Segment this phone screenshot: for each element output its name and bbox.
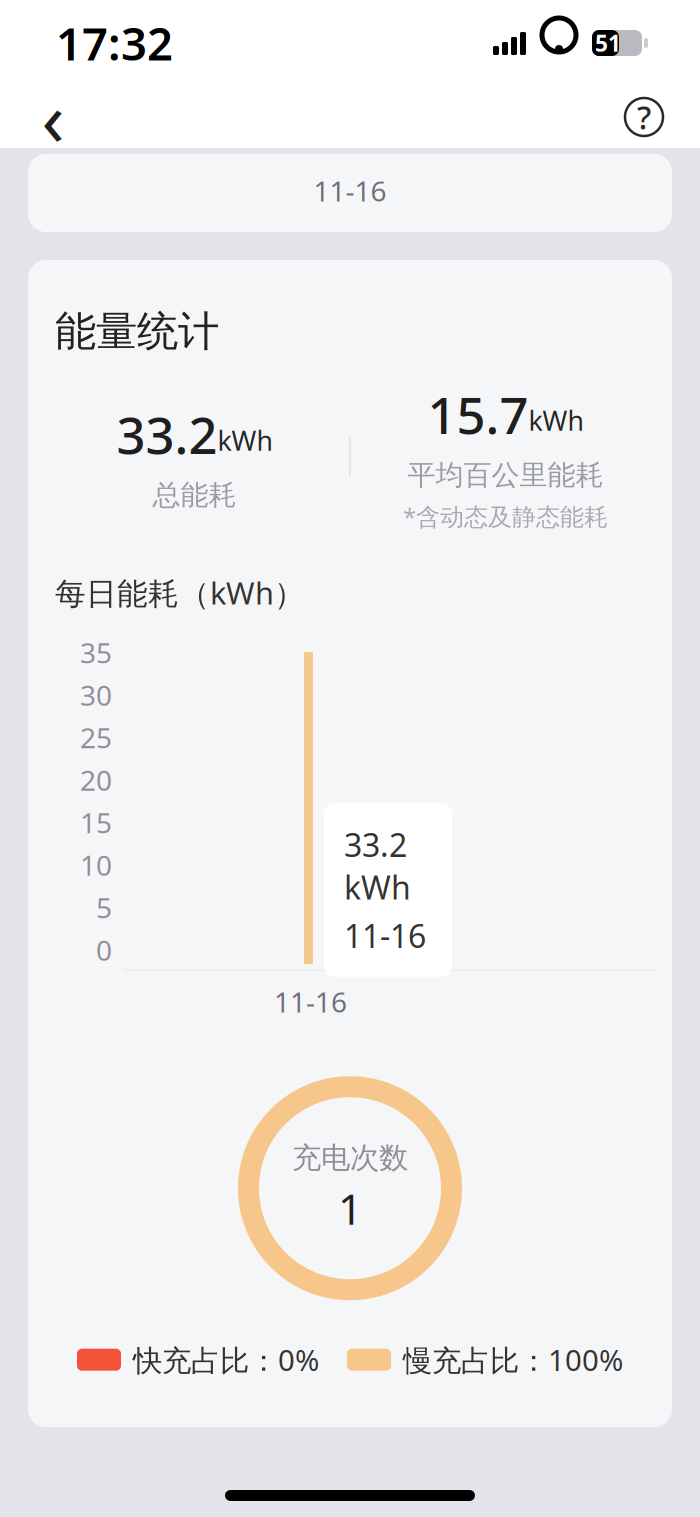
staticText: * 数据准确性将受车端【位置服务】开关影响，: [48, 1463, 652, 1502]
staticText: kWh: [217, 423, 272, 458]
staticText: 25: [80, 719, 112, 756]
staticText: ‹: [41, 67, 64, 167]
button[interactable]: Back: [20, 84, 86, 150]
staticText: kWh: [528, 403, 583, 438]
staticText: 快充占比：0%: [133, 1340, 319, 1379]
staticText: 0: [96, 931, 112, 968]
staticText: 5: [96, 889, 112, 926]
staticText: 10: [80, 846, 112, 883]
staticText: 33.2kWh: [344, 823, 411, 908]
staticText: 33.2: [116, 401, 217, 468]
staticText: 充电次数: [292, 1140, 408, 1176]
staticText: 每日能耗（kWh）: [55, 572, 305, 613]
staticText: 总能耗: [152, 478, 236, 512]
staticText: 11-16: [344, 914, 426, 957]
staticText: 15: [80, 804, 112, 841]
staticText: 35: [80, 634, 112, 671]
staticText: 30: [80, 676, 112, 713]
button[interactable]: Help: [614, 87, 674, 147]
staticText: 15.7: [427, 381, 528, 448]
staticText: 1: [338, 1180, 362, 1237]
staticText: 51: [595, 28, 621, 58]
staticText: 11-16: [313, 172, 386, 209]
staticText: 慢充占比：100%: [403, 1340, 623, 1379]
staticText: 17:32: [56, 13, 173, 73]
staticText: ?: [637, 96, 651, 138]
staticText: 20: [80, 761, 112, 798]
staticText: 11-16: [274, 983, 347, 1020]
staticText: 平均百公里能耗: [407, 458, 603, 492]
staticText: *含动态及静态能耗: [403, 500, 608, 532]
staticText: 能量统计: [55, 306, 219, 357]
